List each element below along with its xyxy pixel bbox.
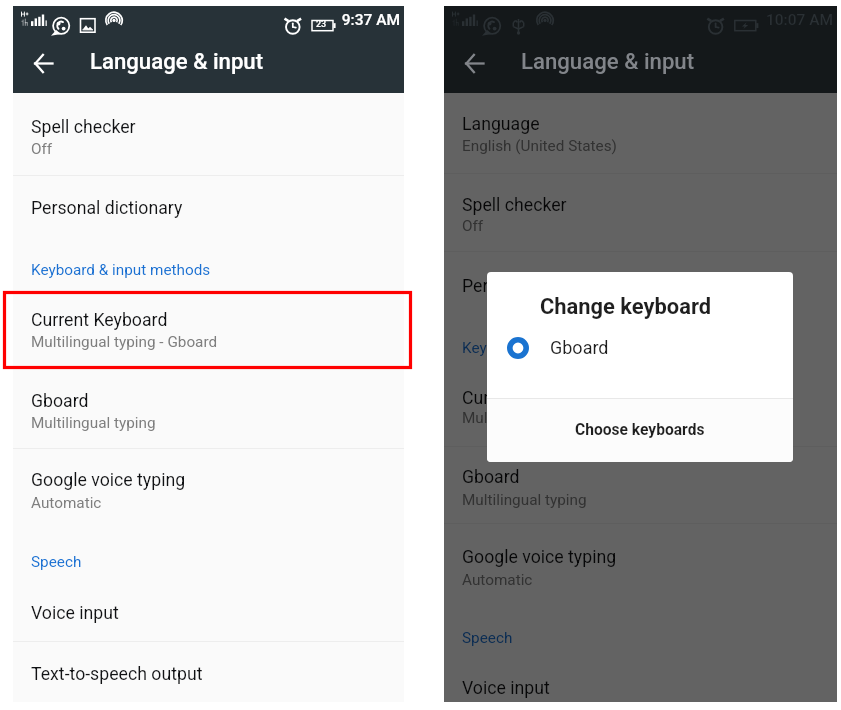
staticText: Voice input	[31, 603, 119, 624]
staticText: Voice input	[462, 678, 550, 699]
staticText: Automatic	[462, 571, 533, 589]
button[interactable]: Current Keyboard	[13, 291, 404, 368]
staticText: Language & input	[521, 48, 695, 74]
staticText: Off	[462, 217, 484, 235]
staticText: Off	[31, 140, 53, 158]
button[interactable]: Voice input	[444, 659, 837, 702]
button[interactable]: Personal dictionary	[13, 176, 404, 234]
staticText: Change keyboard	[540, 294, 712, 320]
button[interactable]: Personal dictionary	[444, 252, 837, 310]
staticText: Gboard	[550, 337, 609, 358]
button[interactable]: Current Keyboard	[444, 370, 837, 446]
staticText: Personal dictionary	[462, 276, 614, 297]
staticText: 23	[316, 19, 327, 30]
staticText: Choose keyboards	[575, 421, 705, 439]
staticText: Speech	[31, 553, 82, 571]
staticText: Multilingual typing	[462, 491, 587, 509]
button[interactable]: Voice input	[13, 583, 404, 641]
staticText: Current Keyboard	[462, 388, 599, 409]
staticText: Text-to-speech output	[31, 664, 203, 685]
button[interactable]: Language	[444, 93, 837, 173]
button[interactable]: Text-to-speech output	[13, 642, 404, 702]
button[interactable]: Back	[453, 42, 495, 84]
button[interactable]: Gboard	[444, 447, 837, 523]
staticText: Gboard	[31, 391, 89, 412]
staticText: Multilingual typing - Gboard	[31, 333, 218, 351]
staticText: Speech	[462, 629, 513, 647]
staticText: 9:37 AM	[13, 11, 400, 29]
staticText: Spell checker	[462, 195, 567, 216]
staticText: Current Keyboard	[31, 310, 168, 331]
staticText: Keyboard & input methods	[462, 339, 642, 357]
button[interactable]: Google voice typing	[13, 449, 404, 526]
button[interactable]: Gboard	[487, 326, 793, 370]
staticText: English (United States)	[462, 137, 617, 155]
staticText: Language	[462, 114, 540, 135]
button[interactable]: Spell checker	[13, 93, 404, 175]
button[interactable]: Google voice typing	[444, 524, 837, 602]
staticText: Automatic	[31, 494, 102, 512]
staticText: Personal dictionary	[31, 198, 183, 219]
button[interactable]: Back	[22, 42, 64, 84]
staticText: Google voice typing	[31, 470, 186, 491]
staticText: 10:07 AM	[444, 11, 833, 29]
staticText: Keyboard & input methods	[31, 261, 211, 279]
staticText: Spell checker	[31, 117, 136, 138]
staticText: Language & input	[90, 48, 264, 74]
button[interactable]: Choose keyboards	[487, 399, 793, 462]
staticText: Multilingual typing	[31, 414, 156, 432]
staticText: Multilingual typing - Gboard	[462, 409, 649, 427]
button[interactable]: Gboard	[13, 369, 404, 448]
staticText: Gboard	[462, 467, 520, 488]
button[interactable]: Spell checker	[444, 174, 837, 251]
staticText: Google voice typing	[462, 547, 617, 568]
